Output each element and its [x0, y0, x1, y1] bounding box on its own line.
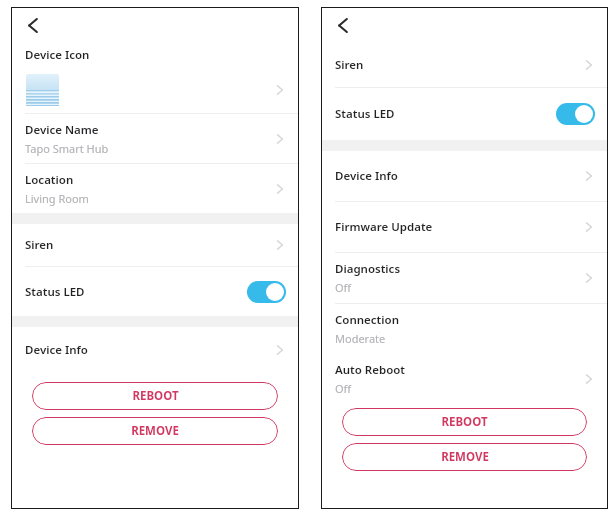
staticText: Moderate [335, 331, 386, 346]
button[interactable]: Siren [321, 43, 608, 87]
button[interactable]: REBOOT [342, 408, 587, 436]
staticText: Status LED [335, 106, 395, 122]
staticText: REBOOT [132, 388, 179, 404]
button[interactable]: Diagnostics [321, 253, 608, 303]
staticText: Siren [25, 237, 54, 253]
button[interactable]: Location [11, 164, 299, 213]
staticText: Connection [335, 312, 399, 328]
staticText: Location [25, 172, 74, 188]
button[interactable]: REBOOT [32, 382, 278, 410]
button[interactable]: Device Info [11, 327, 299, 373]
button[interactable]: REMOVE [32, 417, 278, 445]
staticText: Status LED [25, 284, 85, 300]
button[interactable]: Siren [11, 224, 299, 266]
staticText: Firmware Update [335, 219, 433, 235]
staticText: Living Room [25, 191, 89, 206]
staticText: Device Icon [25, 47, 90, 63]
button[interactable]: Auto Reboot [321, 354, 608, 404]
staticText: Device Name [25, 122, 99, 138]
staticText: REBOOT [441, 414, 488, 430]
button[interactable]: Connection [321, 304, 608, 354]
button[interactable]: Status LED [321, 88, 608, 140]
staticText: Auto Reboot [335, 362, 405, 378]
button[interactable]: Change device icon [11, 67, 299, 113]
staticText: Device Info [25, 342, 88, 358]
button[interactable]: Toggle Status LED [556, 103, 595, 125]
staticText: REMOVE [441, 449, 489, 465]
staticText: Diagnostics [335, 261, 401, 277]
button[interactable]: Device Name [11, 114, 299, 163]
button[interactable]: Back [20, 12, 46, 38]
staticText: Siren [335, 57, 364, 73]
staticText: REMOVE [131, 423, 179, 439]
button[interactable]: Firmware Update [321, 202, 608, 252]
staticText: Tapo Smart Hub [25, 141, 109, 156]
staticText: Off [335, 280, 352, 295]
button[interactable]: REMOVE [342, 443, 587, 471]
button[interactable]: Toggle Status LED [247, 281, 286, 303]
button[interactable]: Status LED [11, 267, 299, 316]
staticText: Off [335, 381, 352, 396]
button[interactable]: Back [330, 12, 356, 38]
button[interactable]: Device Info [321, 151, 608, 201]
staticText: Device Info [335, 168, 398, 184]
